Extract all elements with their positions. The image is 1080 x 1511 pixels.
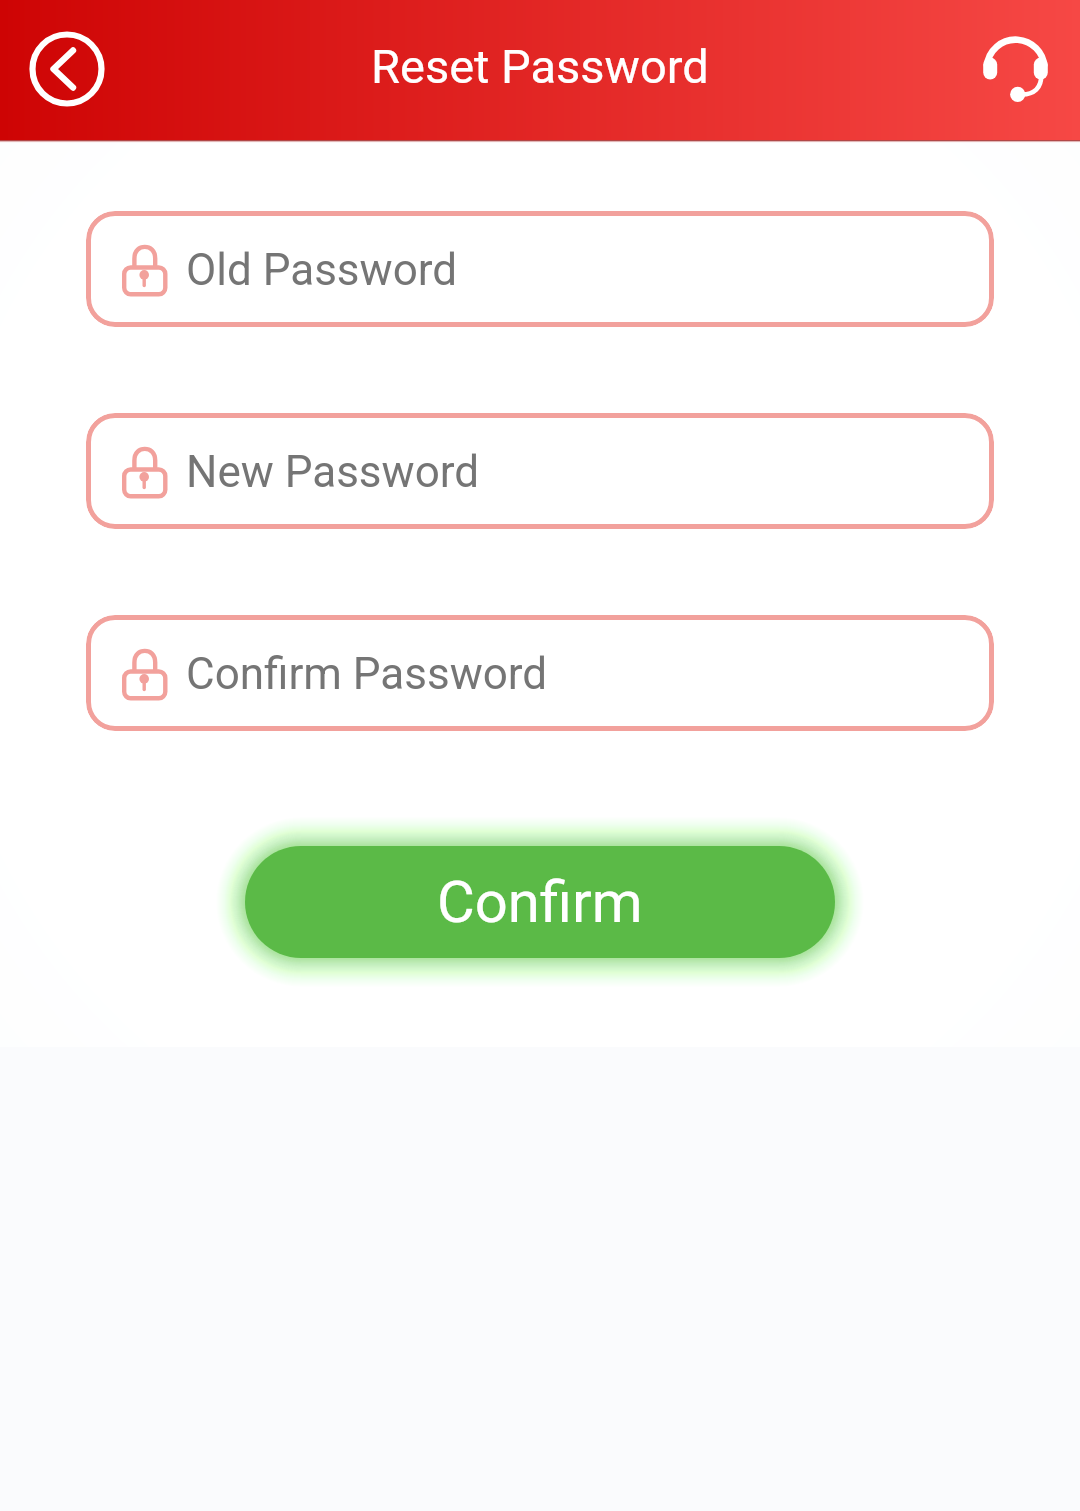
staticText: Confirm: [437, 868, 643, 936]
staticText: New Password: [186, 446, 480, 498]
button[interactable]: Old Password: [86, 211, 994, 327]
button[interactable]: Back: [19, 21, 114, 116]
button[interactable]: Confirm Password: [86, 615, 994, 731]
button[interactable]: Confirm: [245, 846, 835, 958]
staticText: Reset Password: [371, 39, 709, 94]
staticText: Confirm Password: [186, 648, 548, 700]
button[interactable]: New Password: [86, 413, 994, 529]
button[interactable]: Customer support: [967, 21, 1062, 116]
staticText: Old Password: [186, 244, 458, 296]
